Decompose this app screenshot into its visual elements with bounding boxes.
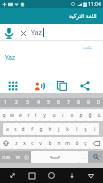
button[interactable]: g (36, 123, 45, 135)
staticText: ı (62, 112, 64, 119)
button[interactable]: w (8, 109, 16, 121)
button[interactable]: x (20, 137, 28, 149)
staticText: 9 (87, 99, 90, 106)
button[interactable]: r (24, 109, 32, 121)
staticText: r (27, 112, 30, 119)
button[interactable]: ı (58, 109, 67, 121)
button[interactable]: Home (44, 168, 59, 183)
button[interactable]: n (54, 137, 63, 149)
button[interactable]: k (63, 123, 72, 135)
button[interactable]: Back (83, 168, 98, 183)
staticText: TR (15, 155, 20, 160)
button[interactable]: l (72, 123, 81, 135)
button[interactable]: 8 (73, 98, 83, 107)
button[interactable]: q (0, 109, 8, 121)
button[interactable]: u (49, 109, 58, 121)
button[interactable]: Backspace (90, 137, 103, 149)
button[interactable]: Space (31, 151, 79, 163)
button[interactable]: اللغة التركية (0, 8, 103, 24)
staticText: ç (84, 140, 87, 147)
button[interactable]: 1 (0, 98, 11, 107)
staticText: ö (75, 140, 79, 147)
button[interactable]: j (54, 123, 63, 135)
staticText: يكتب (83, 45, 93, 50)
button[interactable]: s (11, 123, 19, 135)
button[interactable]: 2 (11, 98, 22, 107)
button[interactable]: z (12, 137, 20, 149)
staticText: w (10, 112, 14, 119)
staticText: e (19, 112, 22, 119)
staticText: t (35, 112, 37, 119)
staticText: Yaz (5, 53, 16, 62)
button[interactable]: i (90, 123, 99, 135)
staticText: 1 (4, 99, 7, 106)
staticText: x (23, 140, 26, 147)
button[interactable]: Voice input (2, 26, 16, 40)
staticText: 8 (77, 99, 80, 106)
button[interactable]: d (19, 123, 27, 135)
button[interactable]: m (63, 137, 72, 149)
staticText: q (2, 112, 6, 119)
staticText: k (66, 126, 69, 133)
button[interactable]: Listen (33, 80, 45, 92)
button[interactable]: ç (81, 137, 90, 149)
button[interactable]: Shift (0, 137, 12, 149)
staticText: 6 (57, 99, 60, 106)
staticText: u (52, 112, 56, 119)
button[interactable]: y (40, 109, 49, 121)
button[interactable]: Fullscreen (5, 168, 20, 183)
staticText: 7 (67, 99, 70, 106)
staticText: o (70, 112, 74, 119)
button[interactable]: h (45, 123, 54, 135)
button[interactable]: Emoji (22, 151, 31, 163)
staticText: g (39, 126, 43, 133)
button[interactable]: 6 (53, 98, 63, 107)
button[interactable]: Copy (56, 80, 68, 92)
button[interactable]: Share (79, 80, 91, 92)
staticText: p (79, 112, 83, 119)
button[interactable]: v (36, 137, 45, 149)
staticText: . (83, 154, 85, 161)
button[interactable]: t (32, 109, 40, 121)
staticText: b (48, 140, 52, 147)
button[interactable]: . (79, 151, 88, 163)
button[interactable]: Recents (24, 168, 39, 183)
button[interactable]: ?123 (0, 151, 12, 163)
staticText: اللغة التركية (69, 12, 97, 20)
button[interactable]: f (27, 123, 36, 135)
staticText: m (65, 140, 70, 147)
button[interactable]: TR (12, 151, 22, 163)
staticText: s (14, 126, 17, 133)
button[interactable]: p (76, 109, 85, 121)
staticText: 3 (26, 99, 29, 106)
button[interactable]: Search (88, 151, 103, 163)
button[interactable]: ü (94, 109, 103, 121)
button[interactable]: a (3, 123, 11, 135)
button[interactable]: o (67, 109, 76, 121)
button[interactable]: ö (72, 137, 81, 149)
button[interactable]: b (45, 137, 54, 149)
button[interactable]: Voice input (0, 24, 103, 41)
button[interactable]: 3 (22, 98, 33, 107)
button[interactable]: 5 (43, 98, 53, 107)
staticText: i (94, 126, 96, 133)
button[interactable]: 0 (93, 98, 103, 107)
button[interactable]: 7 (63, 98, 73, 107)
button[interactable]: Hide keyboard (64, 168, 79, 183)
button[interactable]: 4 (33, 98, 43, 107)
button[interactable]: e (16, 109, 24, 121)
button[interactable]: c (28, 137, 36, 149)
button[interactable]: Clear (18, 28, 28, 38)
button[interactable]: 9 (83, 98, 93, 107)
button[interactable]: ğ (85, 109, 94, 121)
button[interactable]: Keyboard (7, 80, 19, 92)
staticText: Yaz (31, 28, 42, 38)
staticText: n (57, 140, 61, 147)
staticText: 5 (47, 99, 50, 106)
staticText: j (58, 126, 60, 133)
staticText: 0 (97, 99, 100, 106)
button[interactable]: ş (81, 123, 90, 135)
staticText: f (31, 126, 33, 133)
staticText: 2 (15, 99, 18, 106)
staticText: ?123 (2, 155, 10, 160)
